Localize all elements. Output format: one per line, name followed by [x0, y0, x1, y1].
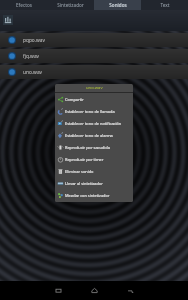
button[interactable]: Eliminar sonido	[55, 165, 133, 177]
button[interactable]: Back	[112, 281, 148, 300]
button[interactable]: Establecer tono de notificación	[55, 117, 133, 129]
staticText: Eliminar sonido	[65, 169, 94, 174]
button[interactable]: Text	[141, 0, 188, 10]
staticText: Reproducir por sacudida	[65, 145, 110, 150]
button[interactable]: uno.wav	[0, 65, 188, 79]
button[interactable]: Compartir	[55, 93, 133, 105]
staticText: uno.wav	[23, 69, 43, 76]
staticText: Sonidos	[109, 2, 127, 8]
button[interactable]: fjq.wav	[0, 49, 188, 63]
button[interactable]: Reproducir por timer	[55, 153, 133, 165]
button[interactable]: Establecer tono de alarma	[55, 129, 133, 141]
button[interactable]: pqpo.wav	[0, 33, 188, 47]
staticText: Compartir	[65, 97, 84, 102]
staticText: fjq.wav	[23, 53, 40, 60]
staticText: Reproducir por timer	[65, 157, 104, 162]
staticText: pqpo.wav	[23, 37, 45, 44]
button[interactable]: Recent apps	[40, 281, 76, 300]
button[interactable]: Home	[76, 281, 112, 300]
staticText: Efectos	[16, 2, 32, 8]
button[interactable]: Sintetizador	[47, 0, 94, 10]
staticText: Establecer tono de alarma	[65, 133, 113, 138]
button[interactable]: Establecer tono de llamada	[55, 105, 133, 117]
staticText: Mezclar con sintetizador	[65, 193, 110, 198]
staticText: Sintetizador	[57, 2, 84, 8]
staticText: Establecer tono de llamada	[65, 109, 115, 114]
staticText: Llevar al sintetizador	[65, 181, 103, 186]
staticText: Text	[160, 2, 170, 8]
staticText: uno.wav	[86, 85, 103, 91]
button[interactable]: Efectos	[0, 0, 47, 10]
button[interactable]: Sonidos	[94, 0, 141, 10]
button[interactable]: Mezclar con sintetizador	[55, 189, 133, 201]
button[interactable]: Llevar al sintetizador	[55, 177, 133, 189]
button[interactable]: Reproducir por sacudida	[55, 141, 133, 153]
staticText: Establecer tono de notificación	[65, 121, 122, 126]
